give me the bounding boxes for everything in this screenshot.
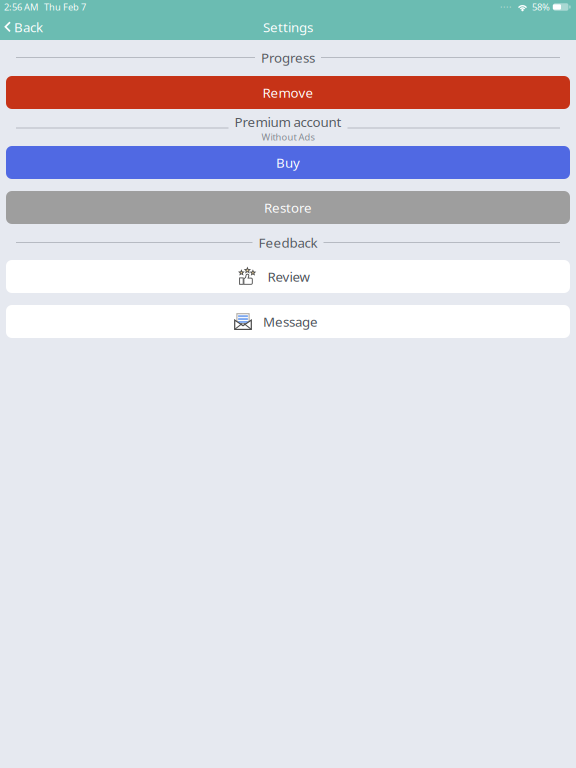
button[interactable]: Restore <box>6 191 570 224</box>
staticText: Back <box>14 18 43 36</box>
staticText: Progress <box>261 49 315 66</box>
button[interactable]: Message <box>6 305 570 338</box>
button[interactable]: Buy <box>6 146 570 179</box>
staticText: Restore <box>264 199 312 216</box>
staticText: ···· <box>500 1 512 13</box>
staticText: Without Ads <box>261 131 314 143</box>
staticText: Thu Feb 7 <box>44 1 86 13</box>
staticText: Remove <box>262 84 313 101</box>
button[interactable]: Back <box>0 15 51 39</box>
staticText: Feedback <box>258 234 317 251</box>
staticText: Premium account <box>234 113 341 131</box>
staticText: 58% <box>532 1 550 13</box>
button[interactable]: Remove <box>6 76 570 109</box>
staticText: Settings <box>263 18 313 36</box>
staticText: 2:56 AM <box>4 1 38 13</box>
staticText: Message <box>263 313 318 330</box>
staticText: Review <box>267 268 309 285</box>
staticText: Buy <box>276 154 300 171</box>
button[interactable]: Review <box>6 260 570 293</box>
